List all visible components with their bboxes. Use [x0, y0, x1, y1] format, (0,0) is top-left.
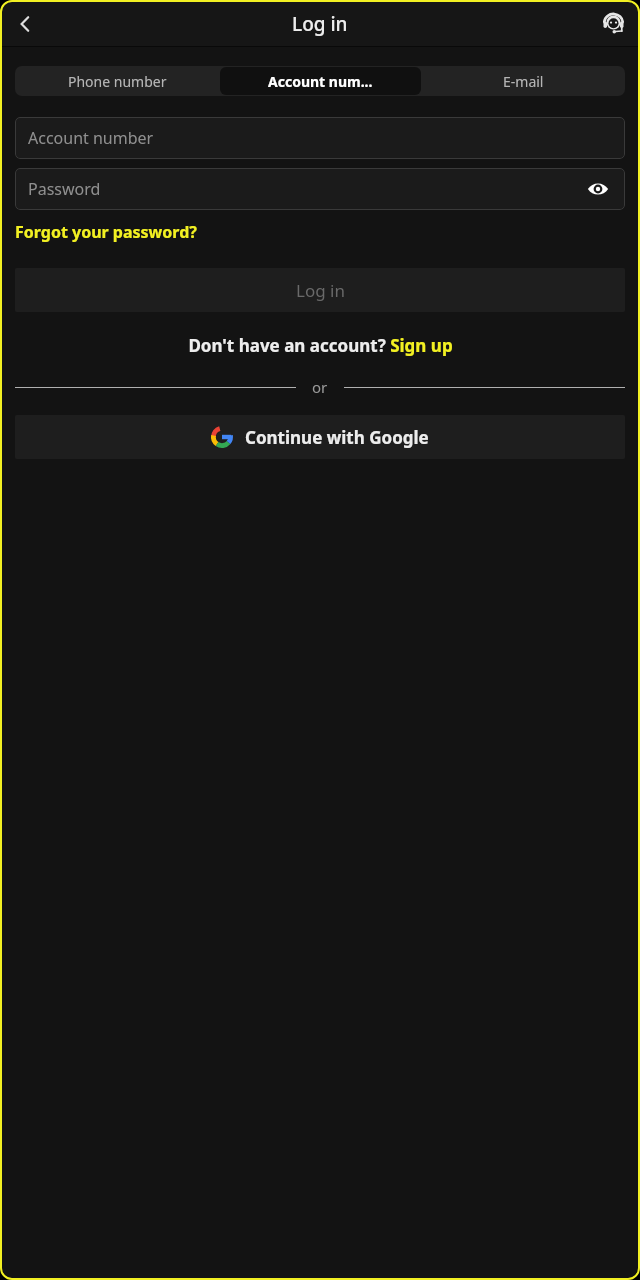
staticText: Log in [292, 11, 348, 37]
staticText: Password [28, 178, 101, 200]
button[interactable]: Support [594, 5, 632, 43]
button[interactable]: Log in [15, 268, 625, 312]
staticText: Phone number [68, 72, 167, 91]
button[interactable]: E-mail [423, 67, 624, 95]
button[interactable]: Phone number [16, 67, 218, 95]
button[interactable]: Continue with Google [15, 415, 625, 459]
staticText: or [312, 377, 328, 397]
staticText: Log in [296, 279, 345, 302]
staticText: Forgot your password? [15, 221, 197, 243]
staticText: Account number [28, 127, 154, 149]
staticText: Continue with Google [245, 426, 429, 449]
button[interactable]: Account number [15, 117, 625, 159]
button[interactable]: Forgot your password? [15, 218, 197, 246]
staticText: E-mail [503, 72, 544, 91]
button[interactable]: Account num... [220, 67, 421, 95]
button[interactable]: Don't have an account? Sign up [184, 330, 457, 361]
button[interactable]: Show password [583, 174, 613, 204]
button[interactable]: Password [15, 168, 625, 210]
button[interactable]: Back [6, 5, 44, 43]
staticText: Account num... [268, 72, 373, 91]
